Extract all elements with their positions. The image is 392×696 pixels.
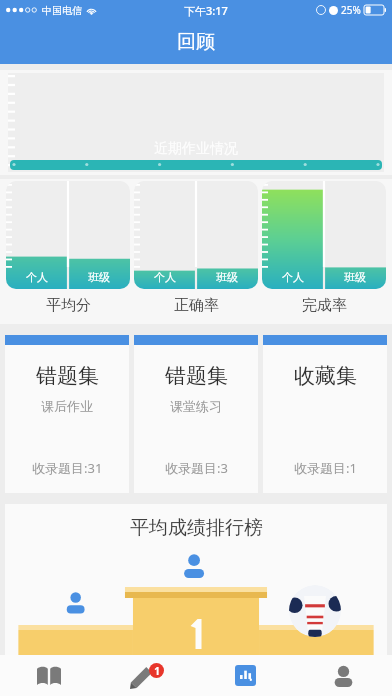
button[interactable]: 错题集 bbox=[5, 335, 129, 493]
staticText: 个人 bbox=[154, 270, 176, 284]
staticText: 下午3:17 bbox=[184, 3, 228, 18]
button[interactable]: Books bbox=[0, 655, 98, 696]
button[interactable]: Homework bbox=[98, 655, 196, 696]
button[interactable]: 错题集 bbox=[134, 335, 258, 493]
button[interactable]: 平均成绩排行榜 bbox=[5, 504, 387, 655]
button[interactable]: 个人 bbox=[262, 181, 386, 322]
button[interactable]: 近期作业情况 bbox=[8, 73, 384, 172]
button[interactable]: Review bbox=[196, 655, 294, 696]
button[interactable]: 收藏集 bbox=[263, 335, 387, 493]
staticText: 班级 bbox=[344, 270, 366, 284]
staticText: 25% bbox=[341, 3, 361, 17]
staticText: 收藏集 bbox=[294, 363, 357, 389]
staticText: 错题集 bbox=[36, 363, 99, 389]
staticText: 完成率 bbox=[302, 296, 347, 315]
staticText: 班级 bbox=[88, 270, 110, 284]
staticText: 课后作业 bbox=[41, 398, 93, 414]
staticText: 班级 bbox=[216, 270, 238, 284]
staticText: 课堂练习 bbox=[170, 398, 222, 414]
button[interactable]: 个人 bbox=[6, 181, 130, 322]
staticText: 近期作业情况 bbox=[154, 140, 238, 158]
button[interactable]: Profile bbox=[294, 655, 392, 696]
staticText: 个人 bbox=[26, 270, 48, 284]
staticText: 平均分 bbox=[46, 296, 91, 315]
staticText: 中国电信 bbox=[42, 4, 82, 17]
staticText: 收录题目:3 bbox=[165, 459, 228, 477]
staticText: 1 bbox=[154, 664, 160, 678]
staticText: 回顾 bbox=[177, 30, 215, 54]
button[interactable]: 个人 bbox=[134, 181, 258, 322]
staticText: 正确率 bbox=[174, 296, 219, 315]
staticText: 收录题目:31 bbox=[32, 459, 103, 477]
staticText: 收录题目:1 bbox=[294, 459, 357, 477]
staticText: 平均成绩排行榜 bbox=[130, 516, 263, 540]
staticText: 个人 bbox=[282, 270, 304, 284]
staticText: 错题集 bbox=[165, 363, 228, 389]
